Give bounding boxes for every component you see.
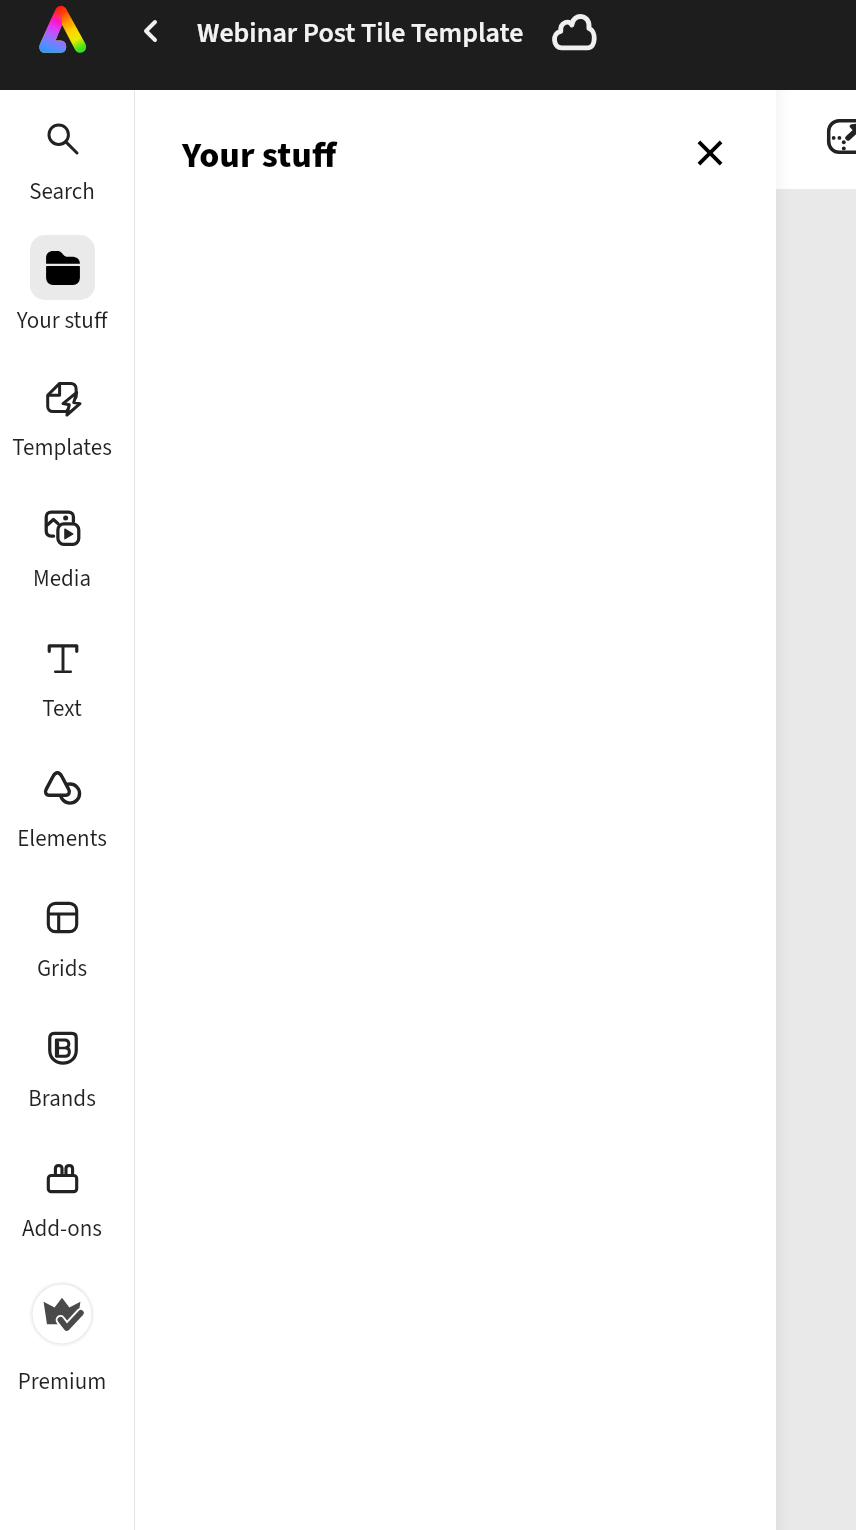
- staticText: Templates: [0, 431, 124, 464]
- staticText: Text: [0, 692, 124, 725]
- button[interactable]: [4, 882, 120, 985]
- staticText: Grids: [0, 952, 124, 985]
- button[interactable]: [4, 1142, 120, 1245]
- staticText: Your stuff: [182, 130, 337, 181]
- staticText: Search: [0, 175, 124, 208]
- staticText: Add-ons: [0, 1212, 124, 1245]
- button[interactable]: [4, 752, 120, 855]
- button[interactable]: [4, 232, 120, 337]
- button[interactable]: Generate with AI: [827, 119, 856, 154]
- staticText: Your stuff: [0, 304, 124, 337]
- button[interactable]: [4, 492, 120, 595]
- button[interactable]: Cloud sync status: [545, 0, 601, 56]
- staticText: Brands: [0, 1082, 124, 1115]
- staticText: Media: [0, 562, 124, 595]
- button[interactable]: [4, 103, 120, 208]
- button[interactable]: [4, 1281, 120, 1381]
- staticText: Webinar Post Tile Template: [197, 13, 524, 53]
- button[interactable]: Back: [128, 9, 172, 53]
- button[interactable]: Close: [687, 130, 733, 176]
- button[interactable]: [4, 1012, 120, 1115]
- button[interactable]: Adobe Express home: [30, 0, 94, 60]
- button[interactable]: [4, 362, 120, 464]
- button[interactable]: [4, 622, 120, 725]
- staticText: Elements: [0, 822, 124, 855]
- staticText: Premium: [0, 1365, 124, 1398]
